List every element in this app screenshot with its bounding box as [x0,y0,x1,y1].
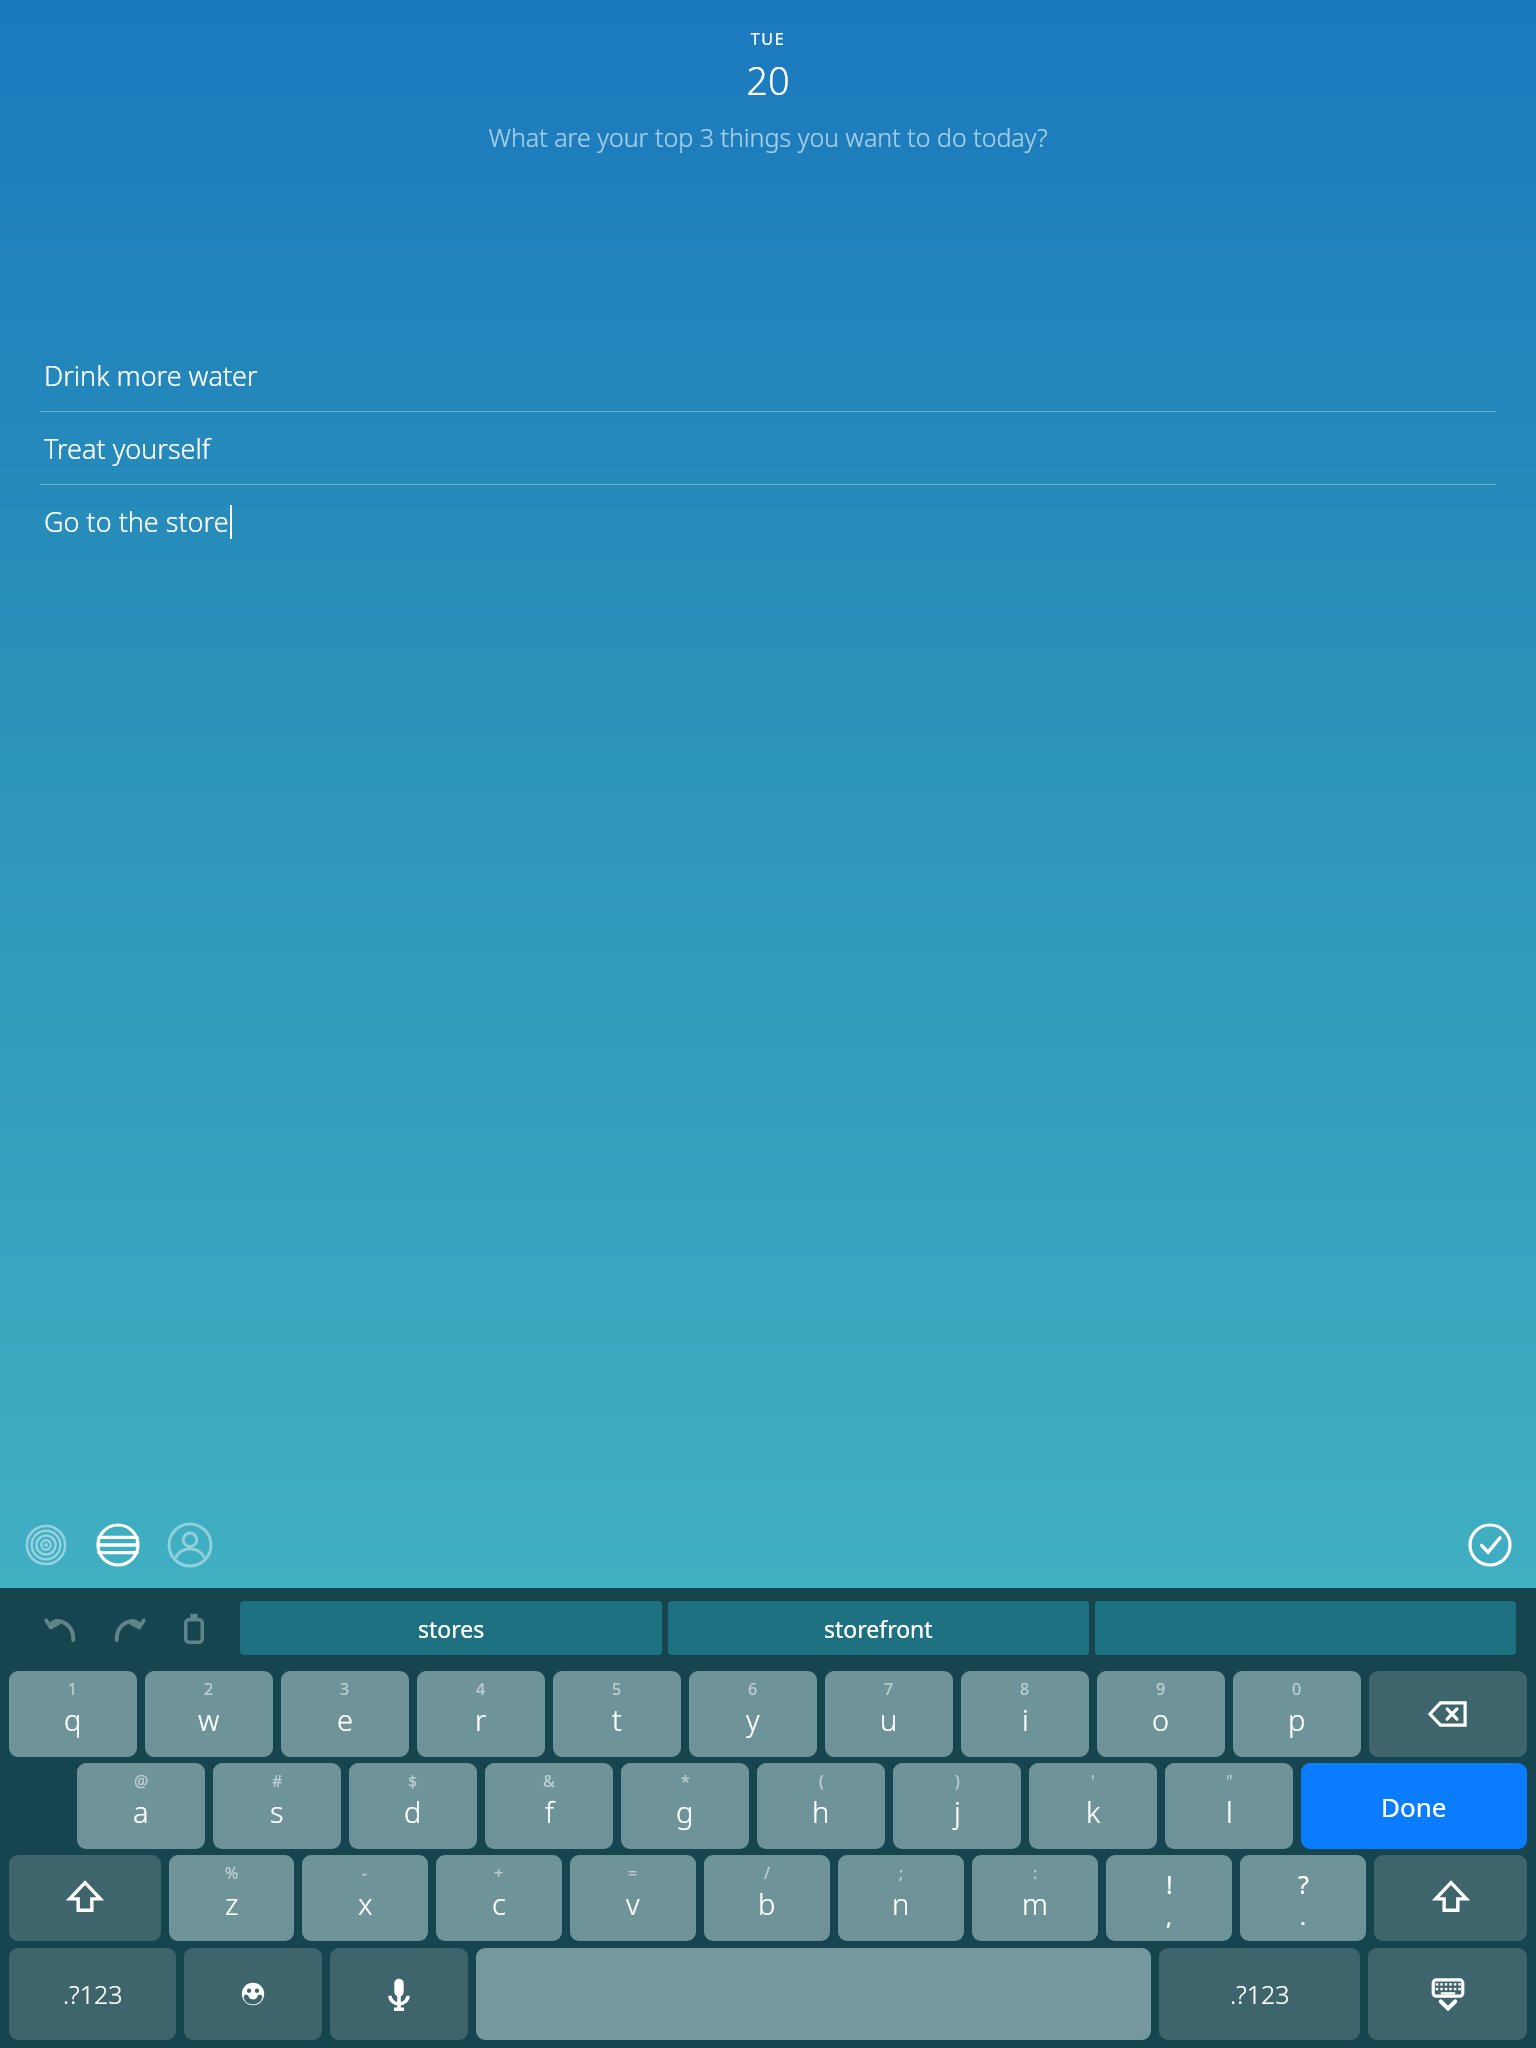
button[interactable]: & [485,1763,613,1849]
staticText: l [1226,1792,1233,1831]
button[interactable]: ? [1240,1855,1366,1941]
staticText: Treat yourself [44,430,211,467]
staticText: 1 [68,1678,78,1700]
staticText: q [64,1700,82,1739]
staticText: % [225,1862,239,1884]
button[interactable]: " [1165,1763,1293,1849]
staticText: a [133,1792,149,1831]
staticText: b [758,1884,776,1923]
staticText: 5 [612,1678,622,1700]
staticText: v [626,1884,640,1923]
staticText: n [892,1884,910,1923]
button[interactable]: 6 [689,1671,817,1757]
staticText: / [764,1862,770,1884]
staticText: k [1086,1792,1101,1831]
button[interactable]: % [169,1855,294,1941]
staticText: 8 [1020,1678,1030,1700]
button[interactable]: = [570,1855,696,1941]
button[interactable]: Shift [1374,1855,1527,1941]
staticText: TUE [0,28,1536,50]
staticText: , [1166,1901,1172,1929]
button[interactable]: ) [893,1763,1021,1849]
staticText: & [543,1770,555,1792]
button[interactable]: Space [476,1948,1151,2040]
button[interactable]: Voice input [330,1948,468,2040]
button[interactable]: Menu [90,1517,146,1573]
button[interactable]: 1 [9,1671,137,1757]
button[interactable]: ! [1106,1855,1232,1941]
staticText: : [1033,1862,1038,1884]
staticText: i [1022,1700,1029,1739]
button[interactable]: ' [1029,1763,1157,1849]
staticText: + [494,1862,504,1884]
staticText: ( [819,1770,824,1792]
button[interactable]: Symbols [1159,1948,1360,2040]
staticText: p [1288,1700,1306,1739]
button[interactable]: Symbols [9,1948,176,2040]
staticText: g [676,1792,694,1831]
button[interactable]: ( [757,1763,885,1849]
button[interactable]: 2 [145,1671,273,1757]
staticText: d [404,1792,422,1831]
staticText: f [545,1792,554,1831]
button[interactable]: Backspace [1369,1671,1527,1757]
staticText: z [225,1884,239,1923]
staticText: u [880,1700,898,1739]
button[interactable]: @ [77,1763,205,1849]
staticText: Drink more water [44,357,258,394]
staticText: ) [955,1770,960,1792]
staticText: 20 [0,54,1536,106]
staticText: r [475,1700,487,1739]
button[interactable]: 8 [961,1671,1089,1757]
button[interactable]: Profile [162,1517,218,1573]
button[interactable]: 7 [825,1671,953,1757]
button[interactable]: $ [349,1763,477,1849]
button[interactable]: Shift [9,1855,161,1941]
staticText: . [1300,1901,1306,1929]
button[interactable]: 5 [553,1671,681,1757]
button[interactable]: # [213,1763,341,1849]
staticText: ? [1298,1867,1309,1901]
button[interactable]: : [972,1855,1098,1941]
button[interactable]: Undo [40,1606,84,1650]
staticText: @ [134,1770,149,1792]
button[interactable]: Drink more water [40,339,1496,412]
button[interactable]: * [621,1763,749,1849]
staticText: 0 [1292,1678,1302,1700]
staticText: 3 [340,1678,350,1700]
staticText: 4 [476,1678,486,1700]
staticText: o [1152,1700,1170,1739]
button[interactable]: ; [838,1855,964,1941]
staticText: ! [1166,1867,1173,1901]
staticText: c [492,1884,506,1923]
button[interactable]: 0 [1233,1671,1361,1757]
staticText: Done [1381,1789,1447,1824]
button[interactable]: - [302,1855,428,1941]
staticText: What are your top 3 things you want to d… [36,120,1500,154]
button[interactable]: storefront [668,1601,1089,1655]
button[interactable]: Treat yourself [40,412,1496,485]
staticText: " [1226,1770,1233,1792]
button[interactable]: + [436,1855,562,1941]
button[interactable]: Done [1301,1763,1527,1849]
button[interactable]: stores [240,1601,662,1655]
button[interactable]: Clipboard [172,1606,216,1650]
button[interactable]: Emoji [184,1948,322,2040]
button[interactable]: Go to the store [40,485,1496,558]
staticText: ' [1091,1770,1095,1792]
button[interactable]: Hide keyboard [1368,1948,1527,2040]
button[interactable]: 9 [1097,1671,1225,1757]
staticText: w [198,1700,220,1739]
staticText: m [1022,1884,1048,1923]
button[interactable]: Focus [18,1517,74,1573]
button[interactable]: Done [1462,1517,1518,1573]
button[interactable]: / [704,1855,830,1941]
button[interactable]: 3 [281,1671,409,1757]
button[interactable]: 4 [417,1671,545,1757]
staticText: stores [418,1613,485,1644]
button[interactable]: Redo [106,1606,150,1650]
staticText: 7 [884,1678,894,1700]
staticText: t [612,1700,622,1739]
staticText: .?123 [63,1977,123,2011]
